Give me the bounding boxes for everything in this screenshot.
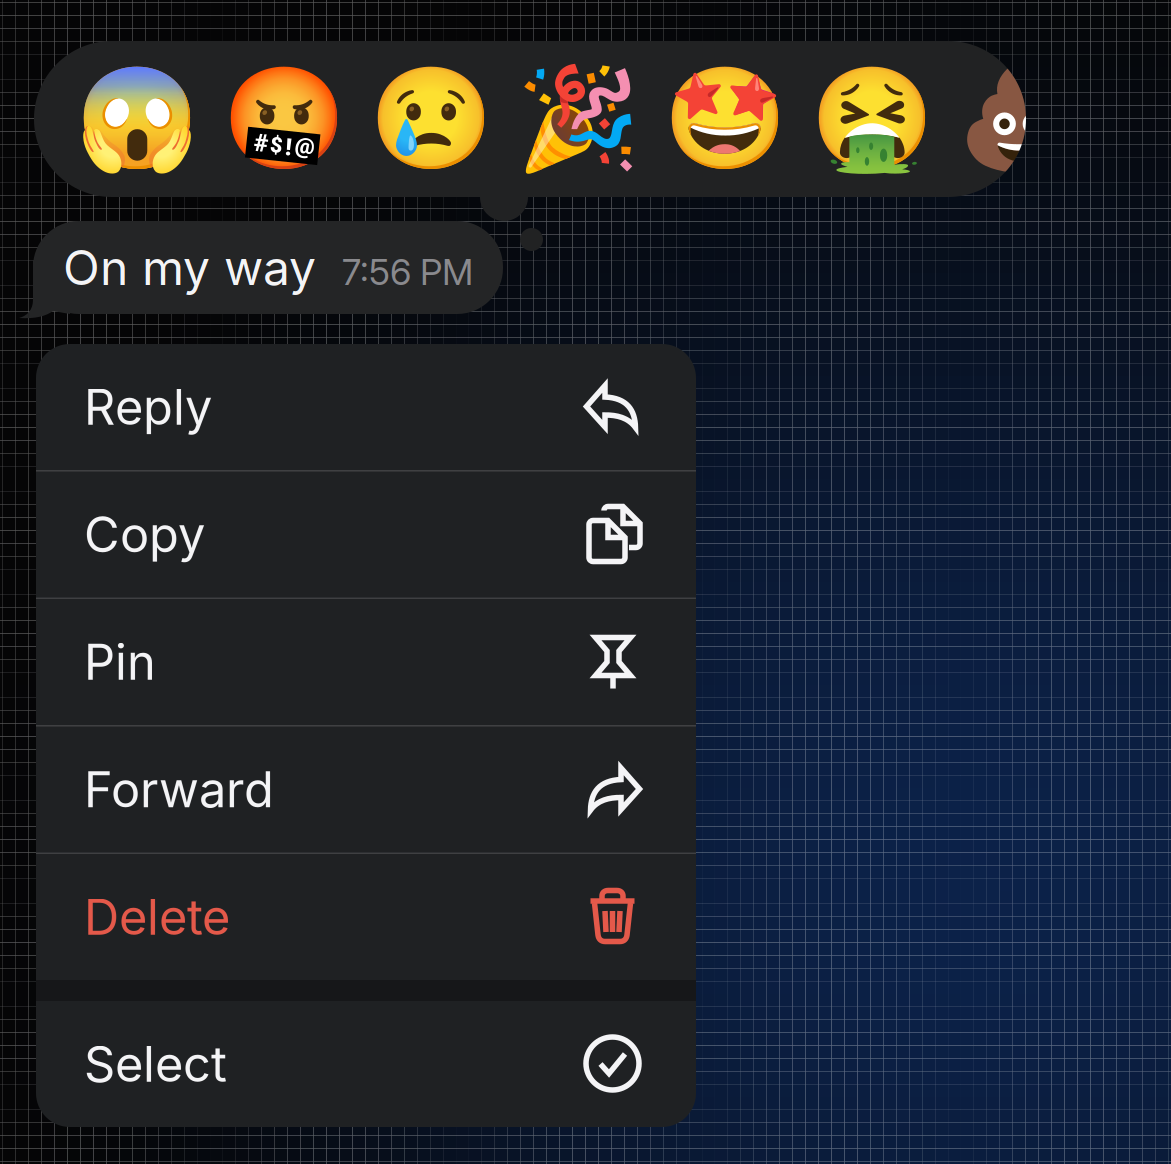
button[interactable]: Select	[36, 1001, 696, 1127]
button[interactable]: React 😢	[382, 63, 481, 175]
button[interactable]: React 🤩	[676, 63, 775, 175]
button[interactable]: Pin	[36, 599, 696, 725]
staticText: 🤬	[222, 60, 347, 178]
button[interactable]: React 🤮	[823, 63, 922, 175]
button[interactable]: React 💩	[970, 63, 1069, 175]
button[interactable]: React 🤬	[235, 63, 334, 175]
staticText: Forward	[84, 760, 274, 819]
staticText: 🤮	[810, 60, 935, 178]
staticText: Copy	[84, 505, 205, 564]
staticText: 😱	[75, 60, 200, 178]
button[interactable]: Delete	[36, 854, 696, 980]
button[interactable]: Forward	[36, 726, 696, 852]
staticText: 💩	[957, 60, 1082, 178]
staticText: Select	[84, 1035, 227, 1093]
staticText: Reply	[84, 378, 212, 436]
button[interactable]: React 😱	[88, 63, 187, 175]
staticText: Delete	[84, 888, 230, 946]
staticText: 7:56 PM	[342, 250, 473, 294]
button[interactable]: Reply	[36, 344, 696, 470]
button[interactable]: Copy	[36, 471, 696, 597]
staticText: 🤩	[663, 60, 788, 178]
staticText: On my way	[63, 238, 316, 297]
staticText: Pin	[84, 633, 156, 691]
button[interactable]: React 🎉	[529, 63, 628, 175]
staticText: 😢	[369, 60, 494, 178]
staticText: 🎉	[516, 60, 641, 178]
